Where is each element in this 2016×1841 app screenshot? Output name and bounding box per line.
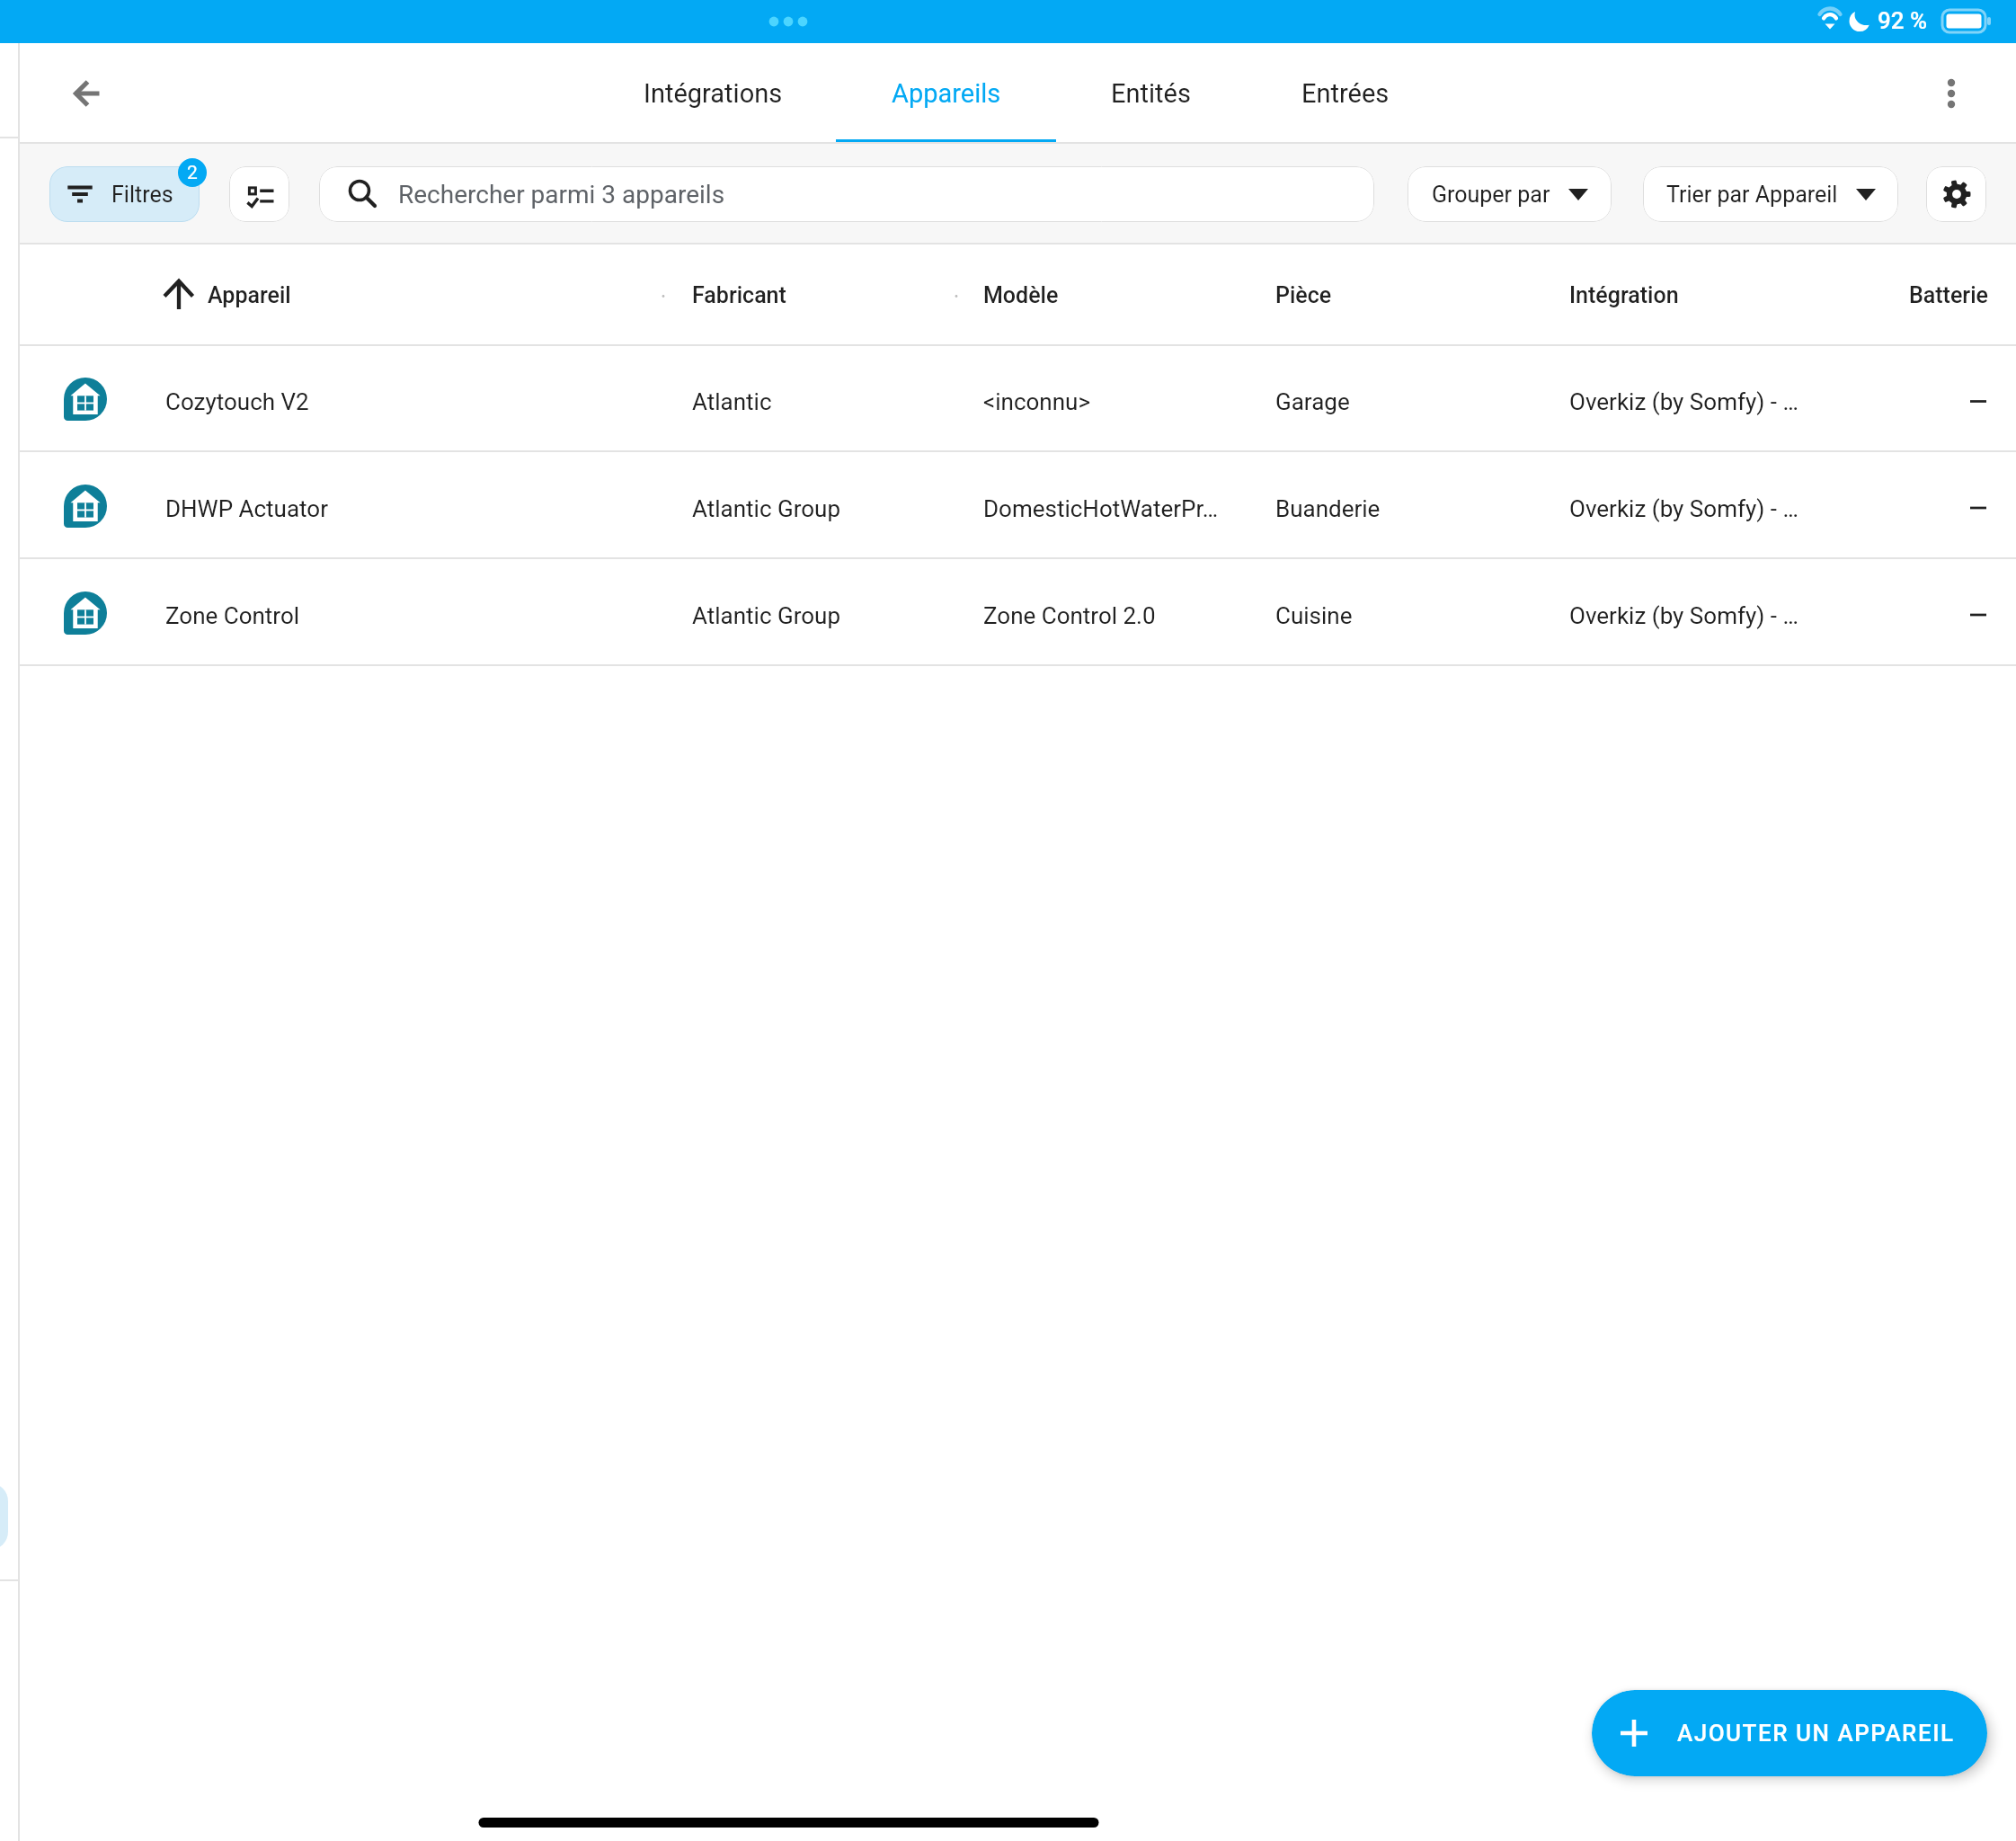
button[interactable]: Trier par Appareil [1643,166,1898,222]
staticText: Pièce [1275,282,1332,308]
button[interactable]: Entrées [1246,43,1445,144]
button[interactable]: Intégrations [591,43,836,144]
staticText: Filtres [111,182,173,208]
staticText: Buanderie [1275,495,1381,522]
button[interactable]: Appareils [836,43,1056,144]
staticText: Fabricant [692,282,786,308]
staticText: Zone Control [165,602,300,629]
button[interactable]: Zone Control [20,559,2016,666]
staticText: Entités [1111,78,1191,109]
staticText: Intégration [1569,282,1679,308]
button[interactable]: Grouper par [1408,166,1612,222]
staticText: Batterie [1909,282,1988,308]
staticText: 2 [187,162,198,184]
staticText: Grouper par [1432,182,1550,208]
staticText: <inconnu> [983,388,1090,415]
staticText: Overkiz (by Somfy) - … [1569,602,1798,629]
button[interactable]: Entités [1056,43,1246,144]
staticText: Intégrations [644,78,783,109]
button[interactable]: Retour [55,63,116,124]
staticText: DHWP Actuator [165,495,328,522]
staticText: Appareils [892,78,1001,109]
staticText: Atlantic [692,388,772,415]
staticText: Atlantic Group [692,495,840,522]
staticText: Entrées [1301,78,1390,109]
button[interactable]: Paramètres [1926,166,1986,222]
button[interactable]: AJOUTER UN APPAREIL [1592,1690,1987,1776]
staticText: 92 % [1878,7,1928,34]
staticText: Atlantic Group [692,602,840,629]
staticText: AJOUTER UN APPAREIL [1677,1720,1955,1747]
button[interactable]: Mode sélection [229,166,289,222]
staticText: Overkiz (by Somfy) - … [1569,388,1798,415]
button[interactable]: Cozytouch V2 [20,346,2016,452]
button[interactable]: Plus d'options [1921,63,1982,124]
staticText: Rechercher parmi 3 appareils [398,180,725,209]
staticText: Appareil [208,282,291,308]
staticText: DomesticHotWaterPr… [983,495,1219,522]
button[interactable]: Rechercher parmi 3 appareils [319,166,1374,222]
staticText: Overkiz (by Somfy) - … [1569,495,1798,522]
staticText: Modèle [983,282,1059,308]
staticText: Zone Control 2.0 [983,602,1156,629]
staticText: Trier par Appareil [1666,182,1838,208]
staticText: Cozytouch V2 [165,388,309,415]
staticText: Cuisine [1275,602,1353,629]
staticText: Garage [1275,388,1350,415]
button[interactable]: DHWP Actuator [20,452,2016,559]
button[interactable]: Filtres [49,166,200,222]
